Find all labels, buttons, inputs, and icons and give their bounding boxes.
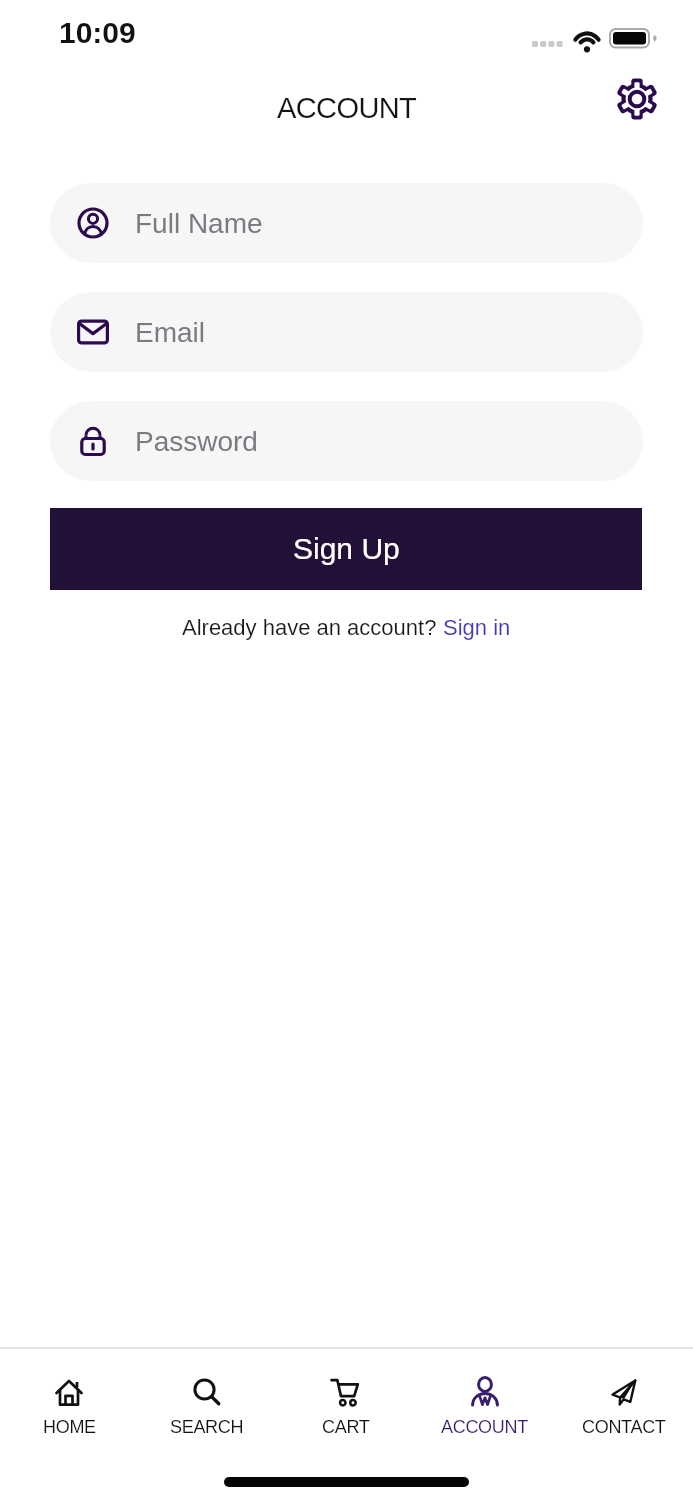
staticText: Password	[135, 426, 258, 457]
staticText: Sign Up	[293, 532, 400, 566]
staticText: CART	[322, 1417, 370, 1437]
button[interactable]: SEARCH	[138, 1349, 276, 1449]
button[interactable]: CONTACT	[554, 1349, 693, 1449]
staticText: Email	[135, 317, 206, 348]
staticText: ACCOUNT	[277, 92, 417, 124]
staticText: Already have an account?	[182, 615, 443, 640]
staticText: 10:09	[59, 16, 136, 50]
staticText: Full Name	[135, 208, 263, 239]
staticText: ACCOUNT	[441, 1417, 528, 1437]
button[interactable]: Sign in	[443, 615, 511, 640]
staticText: SEARCH	[170, 1417, 244, 1437]
button[interactable]: ACCOUNT	[415, 1349, 554, 1449]
staticText: HOME	[43, 1417, 96, 1437]
button[interactable]: CART	[276, 1349, 415, 1449]
button[interactable]: Password	[50, 401, 643, 481]
button[interactable]	[614, 76, 660, 122]
button[interactable]: Email	[50, 292, 643, 372]
staticText: CONTACT	[582, 1417, 666, 1437]
button[interactable]: Sign Up	[50, 508, 642, 590]
button[interactable]: Full Name	[50, 183, 643, 263]
button[interactable]: HOME	[0, 1349, 138, 1449]
